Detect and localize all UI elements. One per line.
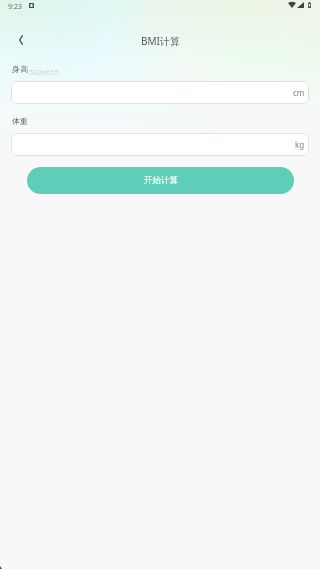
staticText: 582e655 — [29, 67, 59, 77]
staticText: 9:23 — [8, 2, 22, 12]
button[interactable]: 开始计算 — [27, 167, 294, 194]
button[interactable]: kg — [11, 133, 309, 156]
button[interactable]: cm — [11, 81, 309, 104]
staticText: 开始计算 — [144, 175, 178, 186]
staticText: cm — [293, 87, 305, 98]
button[interactable]: Back — [10, 29, 32, 51]
staticText: 体重 — [12, 116, 28, 126]
staticText: kg — [295, 139, 305, 150]
staticText: 身高 — [12, 64, 28, 74]
staticText: BMI计算 — [141, 34, 180, 48]
